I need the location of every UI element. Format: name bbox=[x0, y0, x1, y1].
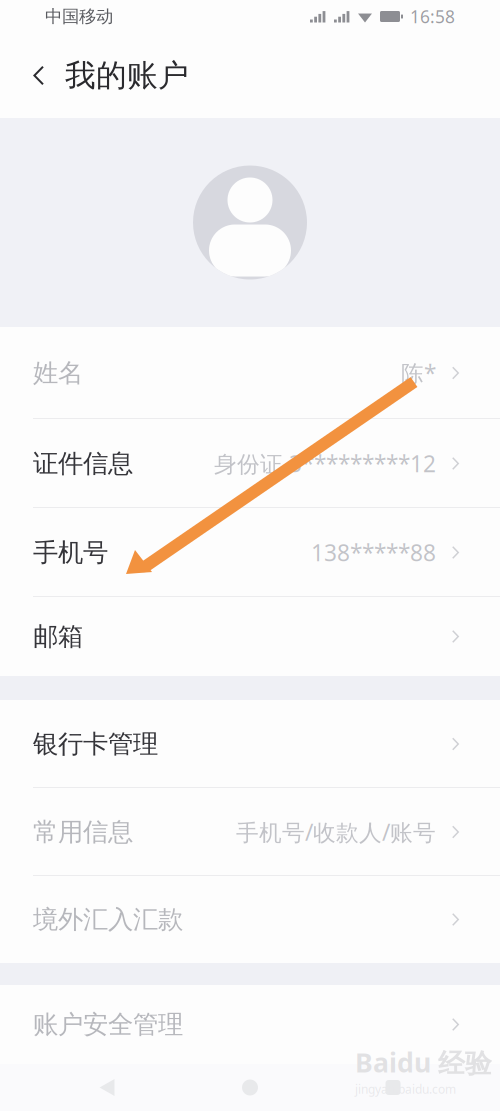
staticText: 银行卡管理 bbox=[33, 728, 158, 759]
staticText: 我的账户 bbox=[65, 57, 189, 94]
staticText: 138*****88 bbox=[311, 537, 436, 567]
staticText: 陈* bbox=[401, 358, 436, 388]
staticText: 邮箱 bbox=[33, 621, 83, 652]
button[interactable]: Recent apps bbox=[357, 1064, 429, 1111]
button[interactable]: 邮箱 bbox=[0, 597, 500, 676]
staticText: 账户安全管理 bbox=[33, 1009, 183, 1040]
staticText: 证件信息 bbox=[33, 448, 133, 479]
staticText: 手机号/收款人/账号 bbox=[236, 817, 436, 847]
button[interactable]: 银行卡管理 bbox=[0, 700, 500, 788]
staticText: 境外汇入汇款 bbox=[33, 904, 183, 935]
staticText: jingyan.baidu.com bbox=[355, 1081, 456, 1097]
button[interactable]: 证件信息 bbox=[0, 419, 500, 508]
staticText: 中国移动 bbox=[45, 6, 113, 27]
staticText: 常用信息 bbox=[33, 816, 133, 847]
staticText: 姓名 bbox=[33, 357, 83, 388]
button[interactable]: 常用信息 bbox=[0, 788, 500, 876]
button[interactable]: 账户安全管理 bbox=[0, 985, 500, 1064]
staticText: Baidu 经验 bbox=[355, 1044, 492, 1080]
staticText: 16:58 bbox=[410, 5, 455, 28]
button[interactable]: Home bbox=[214, 1064, 286, 1111]
button[interactable]: 姓名 bbox=[0, 327, 500, 419]
button[interactable]: 境外汇入汇款 bbox=[0, 876, 500, 963]
button[interactable]: Back bbox=[71, 1064, 143, 1111]
button[interactable]: 手机号 bbox=[0, 508, 500, 597]
staticText: 身份证 3*********12 bbox=[214, 448, 436, 478]
button[interactable]: Back bbox=[0, 33, 65, 118]
staticText: 手机号 bbox=[33, 537, 108, 568]
